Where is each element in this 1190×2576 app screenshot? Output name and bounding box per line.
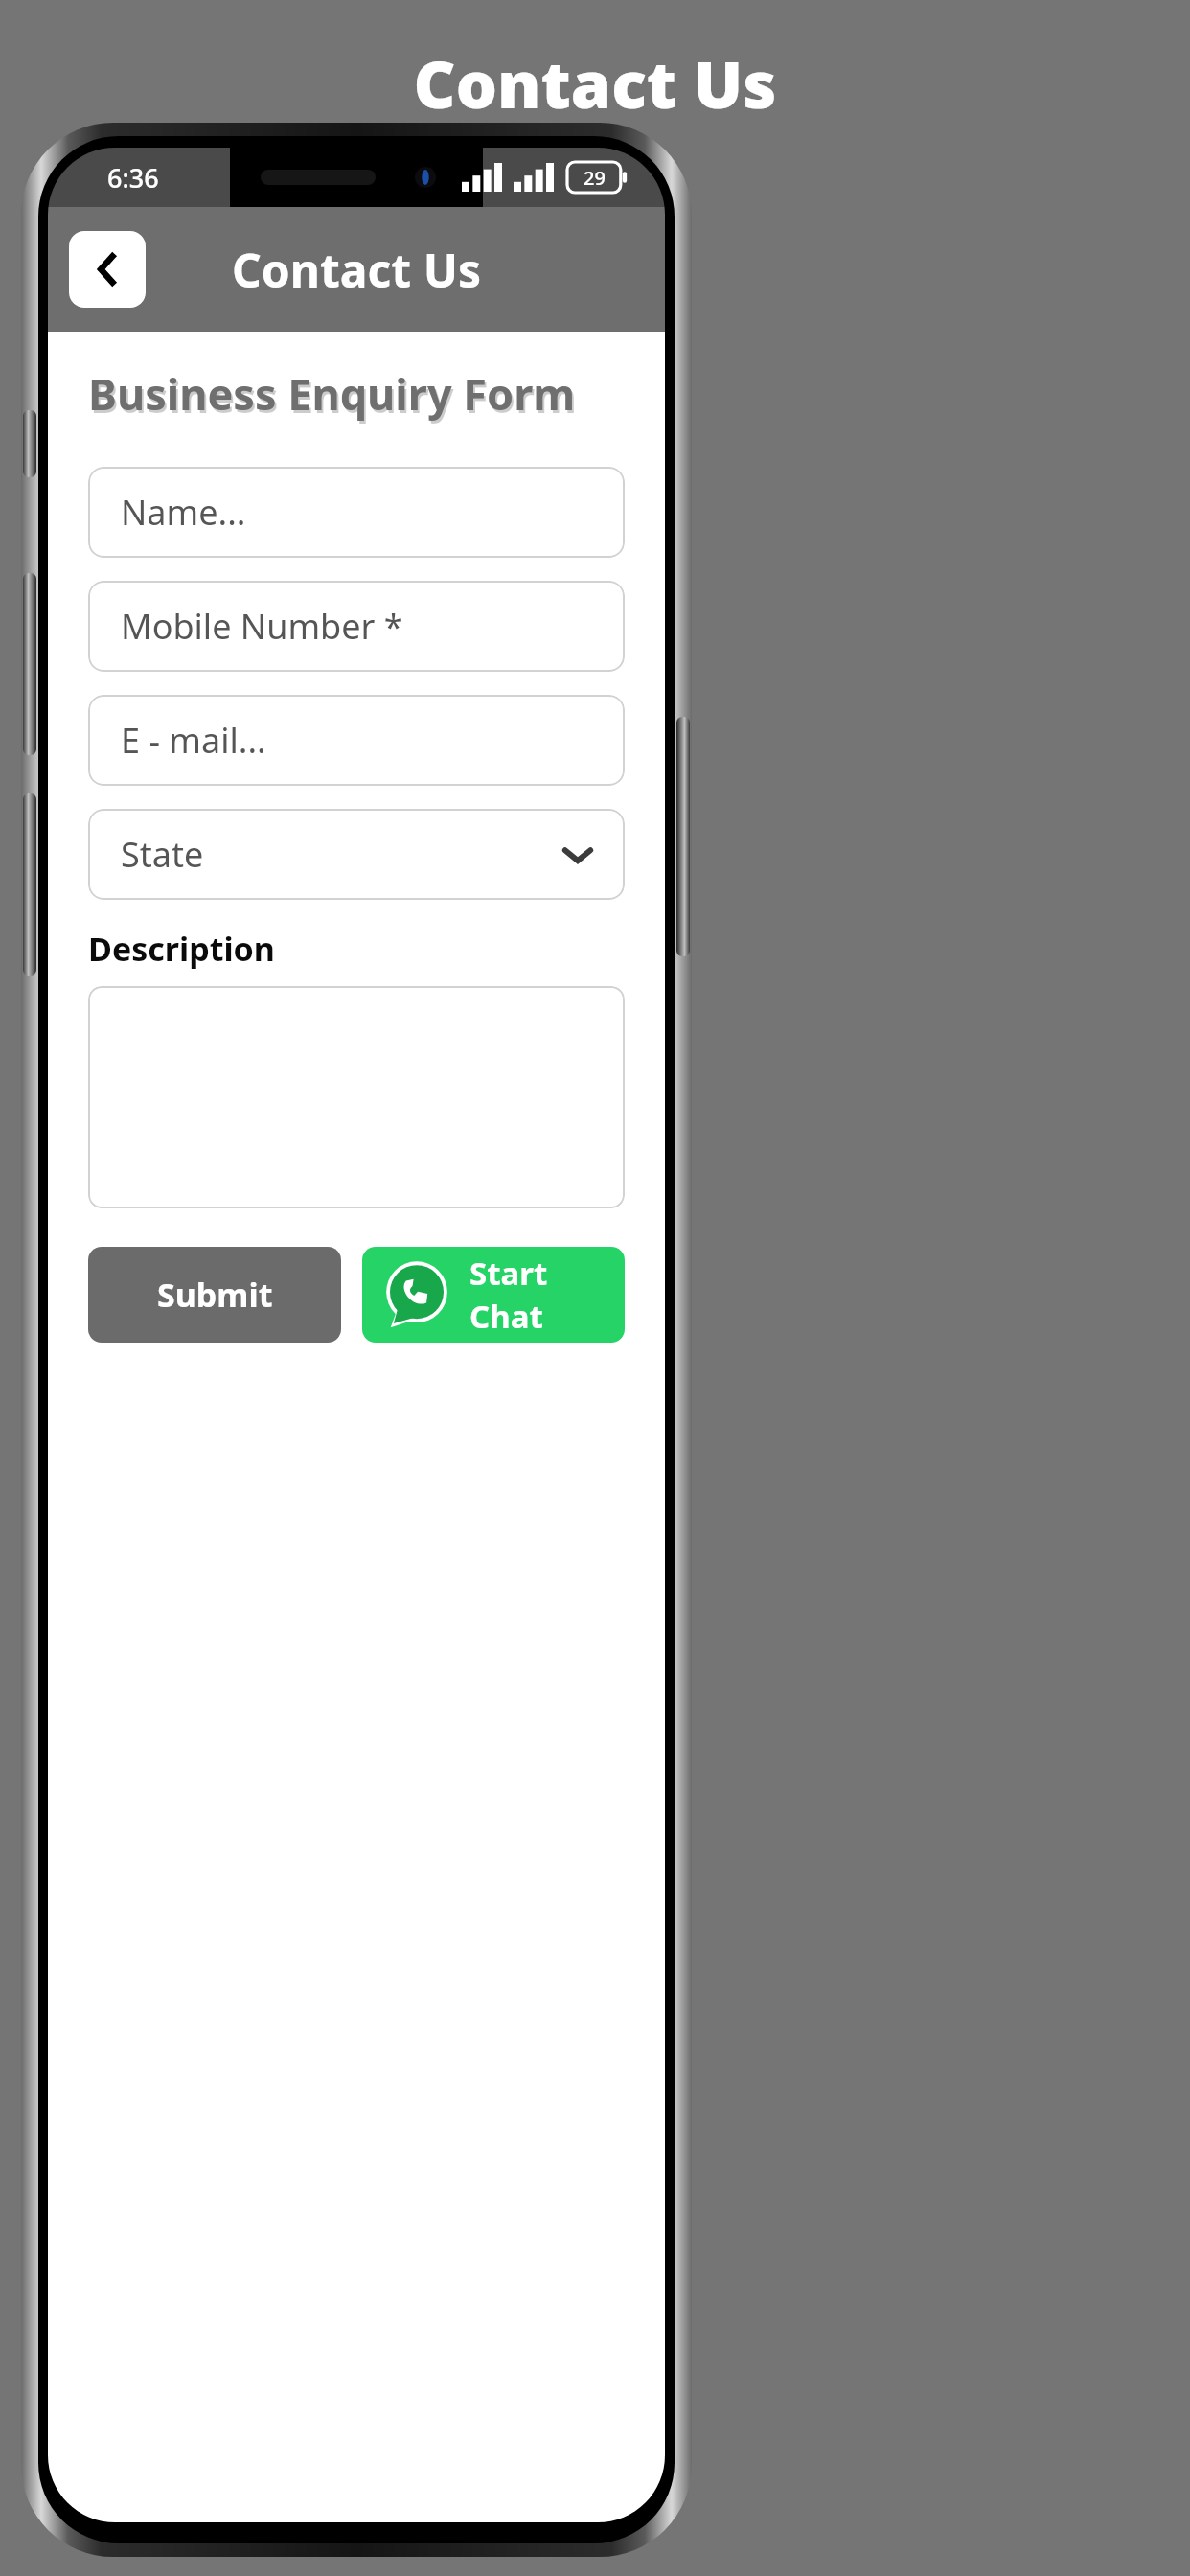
button[interactable]: State	[88, 809, 625, 900]
staticText: Start Chat	[469, 1252, 625, 1338]
button[interactable]	[88, 986, 625, 1208]
staticText: Contact Us	[232, 239, 482, 301]
staticText: Name...	[121, 489, 246, 536]
staticText: Mobile Number *	[121, 603, 403, 650]
staticText: Submit	[157, 1273, 273, 1317]
button[interactable]: Start Chat	[362, 1247, 625, 1343]
staticText: Description	[88, 927, 275, 971]
staticText: Contact Us	[0, 38, 1190, 127]
staticText: 29	[584, 165, 606, 191]
button[interactable]: Submit	[88, 1247, 341, 1343]
staticText: State	[121, 831, 204, 878]
button[interactable]: E - mail...	[88, 695, 625, 786]
staticText: Business Enquiry Form	[90, 367, 578, 425]
staticText: 6:36	[107, 160, 159, 195]
staticText: E - mail...	[121, 717, 266, 764]
button[interactable]: Mobile Number *	[88, 581, 625, 672]
button[interactable]: Name...	[88, 467, 625, 558]
staticText: Business Enquiry Form	[88, 364, 576, 423]
button[interactable]: Back	[69, 231, 146, 308]
